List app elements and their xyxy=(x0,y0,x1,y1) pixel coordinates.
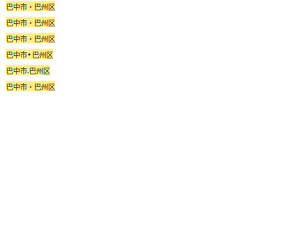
staticText: 巴中市·巴州区 xyxy=(6,17,55,27)
staticText: 巴中市‧巴州区 xyxy=(6,33,55,43)
staticText: 巴中市.巴州区 xyxy=(6,65,50,75)
staticText: 巴中市•巴州区 xyxy=(6,81,55,91)
staticText: 巴中市∙巴州区 xyxy=(6,49,53,59)
staticText: 巴中市·巴州区 xyxy=(6,1,55,11)
